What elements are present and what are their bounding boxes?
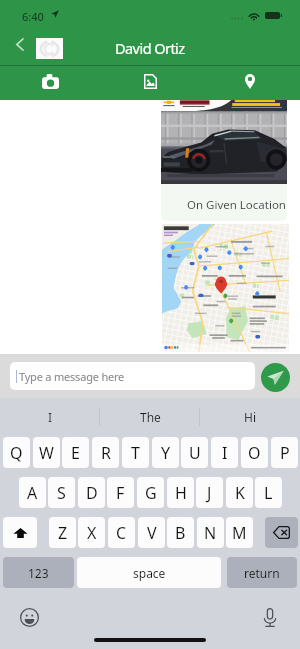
staticText: 6:40	[22, 9, 44, 24]
staticText: F	[116, 482, 125, 504]
staticText: A	[27, 482, 38, 504]
staticText: Hi	[244, 409, 256, 425]
staticText: Y	[161, 442, 171, 464]
button[interactable]: D	[78, 477, 105, 508]
staticText: U	[189, 442, 201, 464]
button[interactable]: space	[77, 557, 221, 588]
button[interactable]: B	[167, 517, 194, 548]
button[interactable]: Camera	[0, 66, 100, 100]
button[interactable]	[3, 517, 37, 548]
staticText: return	[244, 565, 280, 581]
button[interactable]: F	[107, 477, 134, 508]
staticText: P	[280, 442, 290, 464]
staticText: O	[248, 442, 261, 464]
staticText: David Ortiz	[115, 38, 185, 58]
staticText: Z	[58, 522, 68, 544]
button[interactable]: H	[167, 477, 194, 508]
button[interactable]: L	[255, 477, 282, 508]
button[interactable]: E	[62, 437, 89, 468]
button[interactable]: X	[78, 517, 105, 548]
button[interactable]: V	[138, 517, 165, 548]
button[interactable]: Back	[6, 30, 34, 58]
button[interactable]: K	[226, 477, 253, 508]
staticText: G	[145, 482, 157, 504]
button[interactable]: R	[92, 437, 119, 468]
button[interactable]: A	[19, 477, 46, 508]
staticText: I	[48, 409, 53, 425]
button[interactable]: On Given Location	[161, 99, 287, 221]
button[interactable]: N	[197, 517, 224, 548]
button[interactable]: Contact photo	[36, 38, 63, 59]
staticText: T	[131, 442, 140, 464]
button[interactable]: Z	[49, 517, 76, 548]
staticText: C	[116, 522, 127, 544]
button[interactable]: The	[100, 398, 200, 436]
staticText: S	[57, 482, 66, 504]
button[interactable]: Hi	[200, 398, 300, 436]
staticText: H	[175, 482, 187, 504]
button[interactable]: O	[241, 437, 268, 468]
staticText: L	[264, 482, 273, 504]
staticText: The	[140, 409, 161, 425]
staticText: Type a message here	[19, 369, 125, 384]
staticText: On Given Location	[187, 197, 286, 213]
staticText: J	[207, 482, 212, 504]
staticText: 123	[28, 565, 49, 581]
button[interactable]: 123	[3, 557, 74, 588]
button[interactable]: J	[196, 477, 223, 508]
button[interactable]: U	[181, 437, 208, 468]
staticText: V	[147, 522, 157, 544]
staticText: N	[204, 522, 217, 544]
staticText: M	[232, 522, 247, 544]
staticText: X	[87, 522, 97, 544]
button[interactable]	[265, 517, 298, 548]
button[interactable]: G	[137, 477, 164, 508]
button[interactable]: Location	[200, 66, 300, 100]
staticText: space	[133, 565, 166, 581]
button[interactable]: Emoji	[20, 608, 39, 627]
button[interactable]: return	[227, 557, 297, 588]
button[interactable]: Dictate	[262, 607, 278, 628]
staticText: D	[86, 482, 98, 504]
button[interactable]: Type a message here	[10, 362, 255, 390]
button[interactable]: P	[271, 437, 298, 468]
button[interactable]: Q	[3, 437, 30, 468]
button[interactable]: C	[108, 517, 135, 548]
button[interactable]: S	[48, 477, 75, 508]
button[interactable]: T	[122, 437, 149, 468]
button[interactable]: M	[226, 517, 253, 548]
button[interactable]: Y	[152, 437, 179, 468]
staticText: W	[39, 442, 54, 464]
staticText: R	[101, 442, 111, 464]
staticText: I	[222, 442, 228, 464]
button[interactable]: Send	[261, 363, 290, 392]
button[interactable]: Shared location map	[162, 224, 289, 352]
staticText: E	[71, 442, 80, 464]
staticText: B	[175, 522, 186, 544]
button[interactable]: W	[33, 437, 60, 468]
button[interactable]: I	[211, 437, 238, 468]
staticText: K	[235, 482, 245, 504]
button[interactable]: I	[0, 398, 100, 436]
staticText: Q	[10, 442, 23, 464]
button[interactable]: Gallery	[100, 66, 200, 100]
